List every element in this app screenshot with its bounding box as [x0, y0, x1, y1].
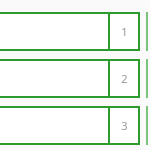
button[interactable]: 2	[0, 59, 140, 98]
staticText: 1	[121, 24, 128, 39]
staticText: 2	[121, 71, 128, 86]
staticText: 3	[121, 118, 128, 133]
button[interactable]: 3	[0, 106, 140, 145]
button[interactable]: 1	[0, 12, 140, 51]
